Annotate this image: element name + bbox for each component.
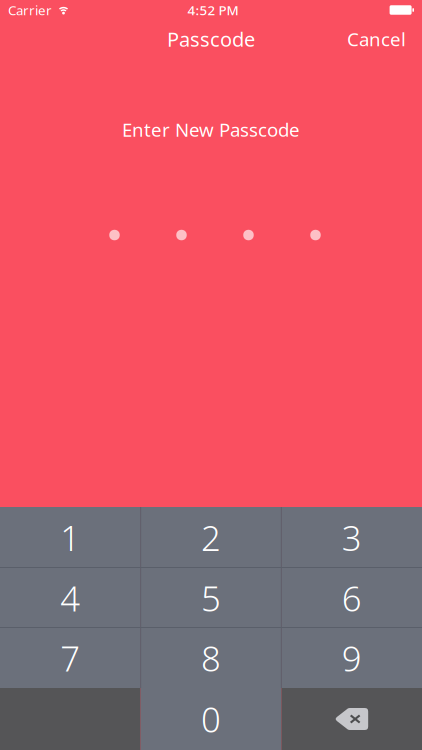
button[interactable]: 7 [0, 628, 141, 688]
button[interactable]: Delete [281, 688, 422, 750]
button[interactable]: 6 [281, 568, 422, 628]
staticText: Passcode [167, 26, 255, 52]
staticText: 1 [60, 514, 80, 560]
staticText: 4:52 PM [187, 1, 238, 19]
staticText: Enter New Passcode [122, 117, 300, 142]
staticText: 9 [342, 635, 362, 681]
staticText: 3 [342, 514, 362, 560]
staticText: 2 [201, 514, 221, 560]
button[interactable]: 3 [281, 507, 422, 568]
staticText: 6 [342, 575, 362, 621]
button[interactable]: 0 [141, 688, 281, 750]
staticText: 8 [201, 635, 221, 681]
staticText: 0 [201, 696, 221, 742]
staticText: Cancel [347, 27, 406, 51]
staticText: 5 [201, 575, 221, 621]
staticText: 7 [60, 635, 80, 681]
button[interactable]: Cancel [331, 19, 422, 59]
staticText: 4 [60, 575, 80, 621]
button[interactable]: 4 [0, 568, 141, 628]
staticText: Carrier [8, 1, 52, 19]
button[interactable]: 2 [141, 507, 281, 568]
button[interactable]: 9 [281, 628, 422, 688]
button[interactable]: 8 [141, 628, 281, 688]
button[interactable]: 5 [141, 568, 281, 628]
button[interactable]: 1 [0, 507, 141, 568]
